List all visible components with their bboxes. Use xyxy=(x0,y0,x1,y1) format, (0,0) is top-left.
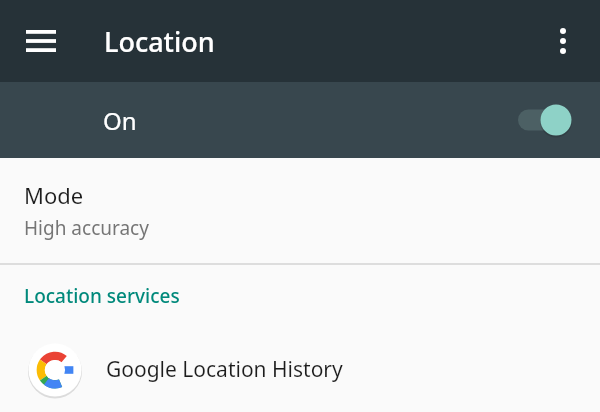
button[interactable]: Google Location History xyxy=(0,327,600,412)
staticText: Google Location History xyxy=(106,355,343,384)
staticText: On xyxy=(103,104,137,137)
staticText: Location xyxy=(104,23,215,60)
staticText: High accuracy xyxy=(24,215,149,241)
button[interactable]: More options xyxy=(537,15,589,67)
staticText: Location services xyxy=(24,283,180,309)
button[interactable]: Open navigation drawer xyxy=(13,13,69,69)
staticText: Mode xyxy=(24,180,84,210)
other: Location on xyxy=(518,100,574,140)
button[interactable]: Mode xyxy=(0,158,600,263)
button[interactable]: On xyxy=(0,82,600,158)
